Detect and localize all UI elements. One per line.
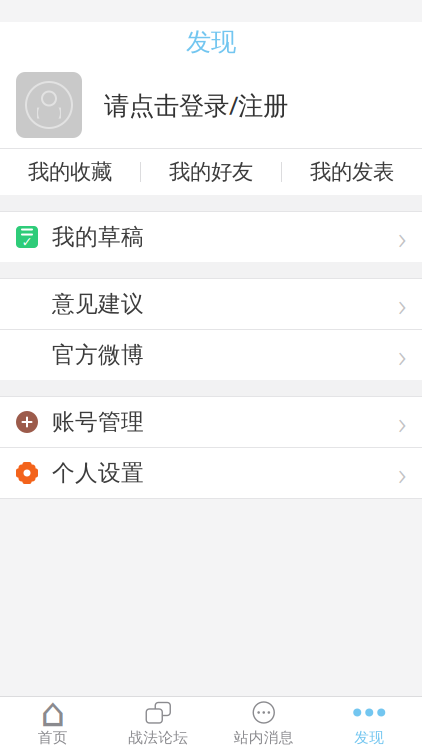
staticText: › [398,401,406,443]
staticText: › [398,452,406,494]
button[interactable]: 个人设置 [0,448,422,498]
staticText: 首页 [38,728,68,746]
button[interactable]: 我的发表 [282,149,422,195]
staticText: 账号管理 [52,408,144,436]
button[interactable]: 意见建议 [0,279,422,329]
staticText: › [398,334,406,376]
staticText: 请点击登录/注册 [104,88,288,122]
button[interactable]: 战法论坛 [105,699,211,748]
button[interactable]: 我的好友 [141,149,281,195]
staticText: 我的收藏 [28,159,112,185]
staticText: 发现 [354,728,384,746]
staticText: 官方微博 [52,341,144,369]
staticText: 意见建议 [52,290,144,318]
button[interactable]: 站内消息 [211,699,316,748]
staticText: ✓ [21,234,32,249]
button[interactable]: ⌂ [0,699,105,748]
staticText: 我的发表 [310,159,394,185]
button[interactable]: ✓ [0,212,422,262]
staticText: 个人设置 [52,459,144,487]
button[interactable]: 请点击登录/注册 [0,62,422,148]
button[interactable]: 发现 [316,699,422,748]
staticText: 我的好友 [169,159,253,185]
staticText: 战法论坛 [128,728,188,746]
staticText: 发现 [186,26,236,57]
staticText: 我的草稿 [52,223,144,251]
button[interactable]: 我的收藏 [0,149,140,195]
staticText: 站内消息 [234,728,294,746]
staticText: › [398,283,406,325]
button[interactable]: 官方微博 [0,330,422,380]
staticText: ⌂ [40,690,65,735]
staticText: › [398,216,406,258]
button[interactable]: 账号管理 [0,397,422,447]
